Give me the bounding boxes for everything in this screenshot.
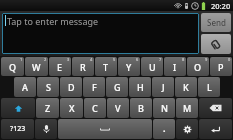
staticText: 4: [90, 57, 93, 62]
staticText: 7: [159, 57, 162, 62]
button[interactable]: F: [83, 77, 105, 97]
staticText: 3: [67, 57, 70, 62]
staticText: L: [207, 81, 212, 93]
staticText: K: [183, 81, 189, 93]
staticText: 20:20: [211, 1, 231, 11]
button[interactable]: Space: [58, 119, 152, 139]
staticText: Y: [126, 61, 132, 73]
staticText: .: [163, 122, 166, 134]
staticText: B: [138, 102, 144, 114]
staticText: 0: [228, 57, 231, 62]
staticText: O: [194, 61, 202, 73]
button[interactable]: T: [95, 57, 117, 76]
staticText: F: [92, 81, 97, 93]
staticText: S: [46, 81, 51, 93]
button[interactable]: C: [84, 98, 106, 118]
button[interactable]: Enter: [199, 119, 232, 139]
staticText: 5: [113, 57, 116, 62]
button[interactable]: R: [72, 57, 94, 76]
staticText: G: [114, 81, 121, 93]
button[interactable]: ?123: [1, 119, 34, 139]
button[interactable]: P: [210, 57, 232, 76]
staticText: D: [68, 81, 75, 93]
staticText: M: [183, 102, 192, 114]
button[interactable]: Voice input: [35, 119, 57, 139]
button[interactable]: Shift: [1, 98, 35, 118]
button[interactable]: Backspace: [199, 98, 232, 118]
staticText: A: [22, 81, 28, 93]
staticText: H: [137, 81, 144, 93]
staticText: P: [218, 61, 224, 73]
button[interactable]: U: [141, 57, 163, 76]
button[interactable]: J: [152, 77, 174, 97]
staticText: V: [115, 102, 121, 114]
button[interactable]: Q: [1, 57, 24, 76]
button[interactable]: M: [176, 98, 198, 118]
staticText: ?123: [10, 124, 26, 134]
button[interactable]: V: [107, 98, 129, 118]
staticText: Q: [9, 61, 17, 73]
button[interactable]: .: [153, 119, 175, 139]
button[interactable]: Send: [201, 13, 231, 32]
button[interactable]: K: [175, 77, 197, 97]
staticText: R: [80, 61, 86, 73]
staticText: 1: [20, 57, 23, 62]
button[interactable]: Y: [118, 57, 140, 76]
staticText: I: [173, 61, 177, 73]
staticText: 8: [182, 57, 185, 62]
staticText: N: [161, 102, 168, 114]
staticText: 6: [136, 57, 139, 62]
button[interactable]: S: [37, 77, 59, 97]
button[interactable]: N: [153, 98, 175, 118]
staticText: C: [92, 102, 98, 114]
staticText: 2: [44, 57, 47, 62]
button[interactable]: Settings: [176, 119, 198, 139]
button[interactable]: H: [129, 77, 151, 97]
staticText: E: [57, 61, 63, 73]
button[interactable]: E: [49, 57, 71, 76]
button[interactable]: I: [164, 57, 186, 76]
button[interactable]: W: [25, 57, 48, 76]
button[interactable]: X: [60, 98, 83, 118]
staticText: T: [103, 61, 109, 73]
staticText: J: [162, 81, 165, 93]
button[interactable]: L: [198, 77, 220, 97]
button[interactable]: B: [130, 98, 152, 118]
staticText: Send: [207, 17, 226, 28]
button[interactable]: A: [14, 77, 36, 97]
button[interactable]: O: [187, 57, 209, 76]
staticText: U: [149, 61, 156, 73]
button[interactable]: G: [106, 77, 128, 97]
button[interactable]: Attach: [201, 34, 231, 54]
staticText: Tap to enter message: [7, 15, 99, 27]
button[interactable]: Z: [36, 98, 59, 118]
button[interactable]: D: [60, 77, 82, 97]
button[interactable]: Tap to enter message: [2, 13, 199, 54]
staticText: Z: [45, 102, 51, 114]
staticText: 9: [205, 57, 208, 62]
staticText: X: [69, 102, 75, 114]
staticText: W: [32, 61, 41, 73]
